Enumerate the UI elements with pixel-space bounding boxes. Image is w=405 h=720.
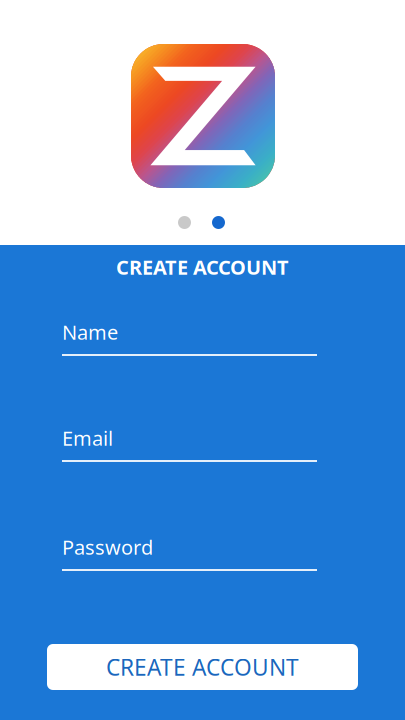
button[interactable]: Email [62, 427, 317, 462]
button[interactable]: CREATE ACCOUNT [47, 644, 358, 690]
staticText: CREATE ACCOUNT [106, 652, 299, 682]
button[interactable]: Password [62, 536, 317, 571]
staticText: Email [62, 425, 113, 451]
staticText: Password [62, 534, 153, 560]
button[interactable]: Name [62, 321, 317, 356]
staticText: CREATE ACCOUNT [116, 254, 289, 280]
staticText: Name [62, 319, 118, 345]
